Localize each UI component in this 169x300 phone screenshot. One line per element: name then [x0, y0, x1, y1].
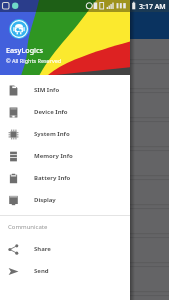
button[interactable]: System Info — [0, 123, 130, 145]
staticText: SIM Info — [34, 86, 60, 94]
button[interactable]: SIM Info — [0, 79, 130, 101]
staticText: © All Rights Reserved — [6, 57, 62, 64]
staticText: System Info — [34, 130, 70, 138]
button[interactable]: Share — [0, 238, 130, 260]
staticText: Send — [34, 267, 49, 275]
staticText: Share — [34, 245, 51, 253]
staticText: Communicate — [8, 223, 48, 231]
button[interactable]: Battery Info — [0, 167, 130, 189]
button[interactable]: Memory Info — [0, 145, 130, 167]
staticText: Device Info — [34, 108, 68, 116]
button[interactable]: Display — [0, 189, 130, 211]
button[interactable]: Send — [0, 260, 130, 282]
staticText: Memory Info — [34, 152, 73, 160]
button[interactable]: Device Info — [0, 101, 130, 123]
staticText: Display — [34, 196, 56, 204]
staticText: Battery Info — [34, 174, 71, 182]
staticText: EasyLogics — [6, 45, 44, 55]
staticText: 3:17 AM — [139, 2, 166, 12]
